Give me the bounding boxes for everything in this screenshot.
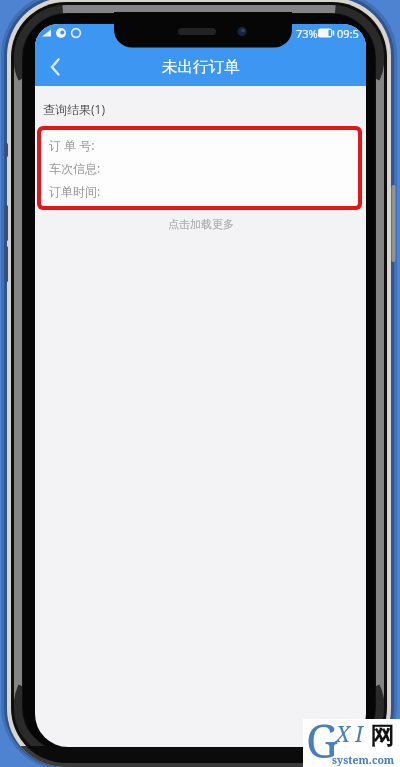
staticText: 73% — [296, 26, 318, 41]
button[interactable]: 点击加载更多 — [35, 210, 366, 238]
staticText: 车次信息: — [49, 160, 101, 176]
staticText: 订单时间: — [49, 183, 101, 199]
staticText: X I — [336, 720, 364, 749]
staticText: 未出行订单 — [162, 57, 240, 77]
staticText: system.com — [332, 753, 395, 767]
staticText: 订 单 号: — [49, 137, 95, 153]
staticText: 点击加载更多 — [168, 217, 234, 231]
staticText: G — [306, 710, 339, 758]
staticText: 09:5 — [337, 26, 359, 41]
button[interactable] — [35, 48, 75, 86]
staticText: 查询结果(1) — [43, 101, 106, 117]
button[interactable]: 订 单 号: — [41, 130, 358, 206]
staticText: 网 — [370, 721, 394, 751]
